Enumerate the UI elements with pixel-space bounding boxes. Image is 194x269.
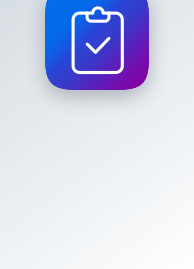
button[interactable]: Tasks: [45, 0, 149, 90]
